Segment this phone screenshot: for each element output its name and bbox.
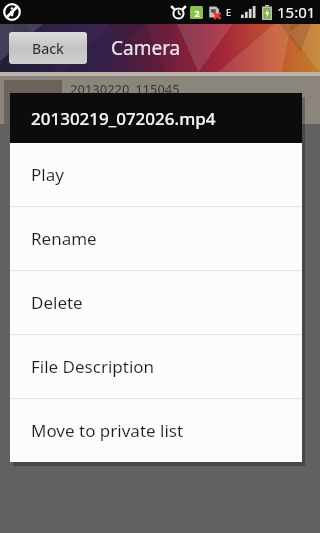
button[interactable]: Move to private list — [10, 399, 302, 462]
button[interactable]: Play — [10, 143, 302, 206]
staticText: 2 — [194, 7, 200, 19]
button[interactable]: Back — [9, 32, 87, 64]
staticText: Move to private list — [31, 419, 184, 442]
staticText: 20130219_072026.mp4 — [31, 107, 216, 130]
staticText: Delete — [31, 291, 83, 314]
other: Restricted notification — [3, 3, 21, 21]
button[interactable]: File Description — [10, 335, 302, 398]
staticText: Back — [32, 39, 64, 58]
button[interactable]: Rename — [10, 207, 302, 270]
staticText: 20130220_115045 — [70, 80, 180, 98]
staticText: Play — [31, 163, 64, 186]
staticText: Rename — [31, 227, 97, 250]
staticText: 15:01 — [277, 2, 316, 22]
button[interactable]: Delete — [10, 271, 302, 334]
staticText: E — [226, 6, 232, 18]
staticText: Camera — [111, 35, 181, 61]
staticText: File Description — [31, 355, 155, 378]
